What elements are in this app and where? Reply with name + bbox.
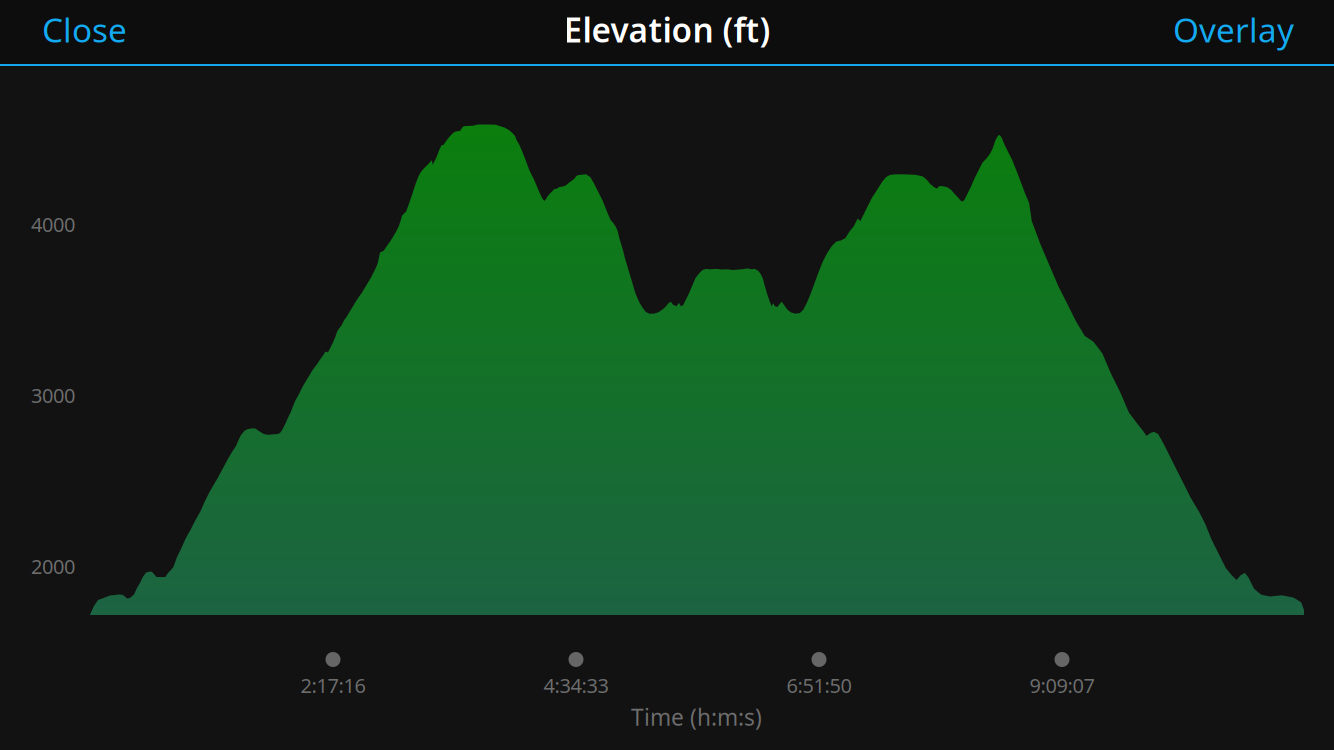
staticText: 3000 <box>31 382 75 409</box>
staticText: Overlay <box>1173 7 1294 52</box>
staticText: 6:51:50 <box>786 672 851 699</box>
staticText: Time (h:m:s) <box>631 702 762 732</box>
button[interactable]: Close <box>0 0 169 64</box>
staticText: Close <box>42 7 127 52</box>
staticText: 4000 <box>31 211 75 238</box>
staticText: 4:34:33 <box>543 672 608 699</box>
staticText: 2:17:16 <box>300 672 365 699</box>
button[interactable]: Overlay <box>1131 0 1334 64</box>
staticText: 2000 <box>31 553 75 580</box>
staticText: Elevation (ft) <box>563 7 770 52</box>
staticText: 9:09:07 <box>1029 672 1094 699</box>
